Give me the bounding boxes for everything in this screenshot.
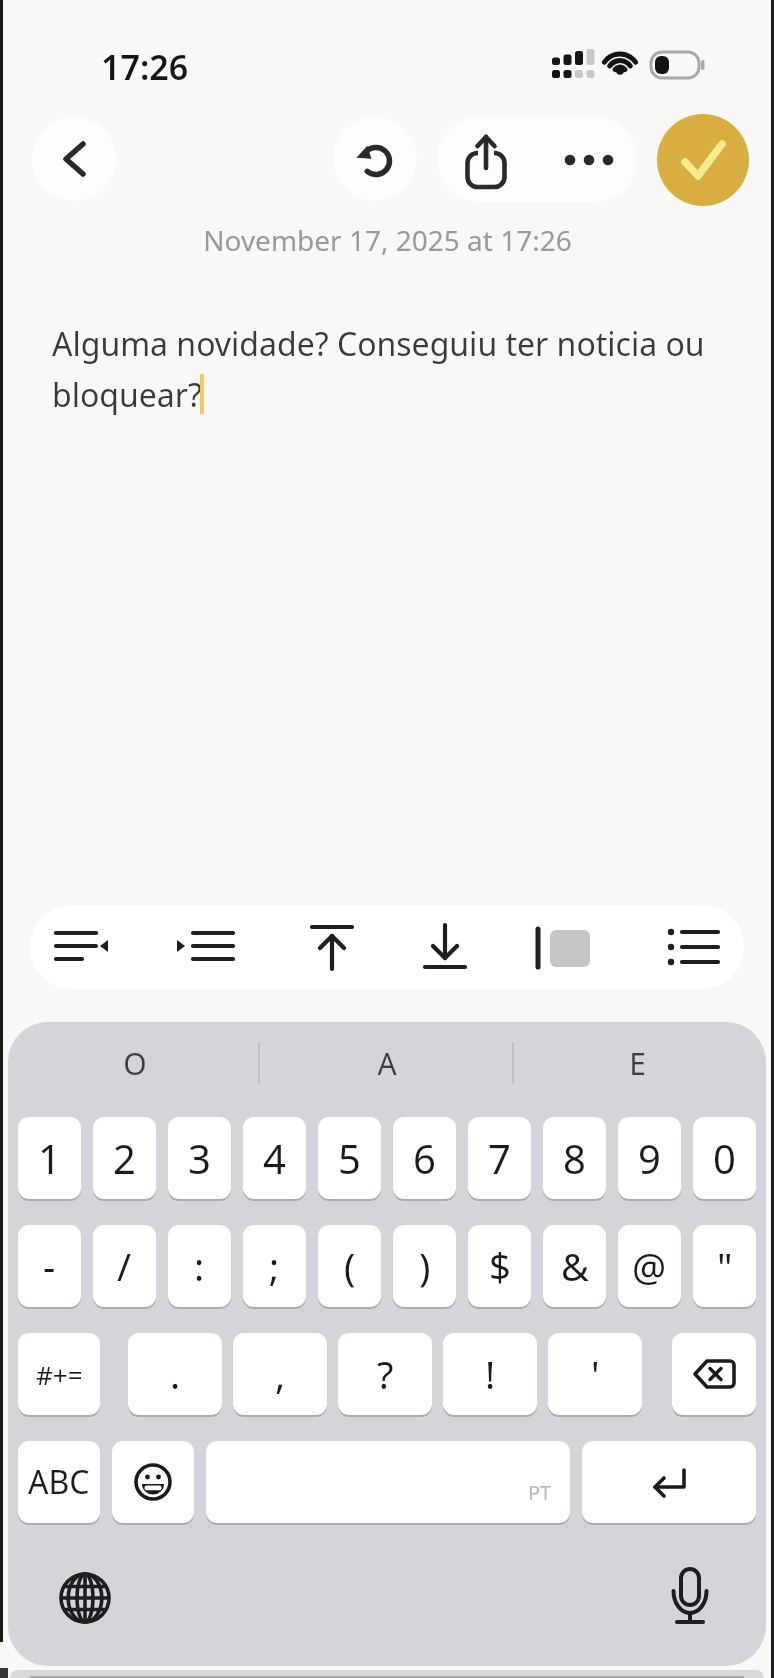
staticText: Alguma novidade? Conseguiu ter noticia o… [52,322,705,416]
staticText: ) [419,1240,431,1292]
staticText: A [377,1043,397,1084]
staticText: , [275,1348,286,1400]
staticText: ' [591,1348,600,1400]
staticText: #+= [36,1357,83,1392]
staticText: ? [377,1348,394,1400]
staticText: & [561,1240,589,1292]
staticText: @ [632,1240,667,1292]
staticText: 8 [563,1131,586,1185]
staticText: 9 [638,1131,661,1185]
staticText: 4 [263,1131,286,1185]
staticText: 7 [488,1131,511,1185]
staticText: O [123,1043,147,1084]
staticText: November 17, 2025 at 17:26 [203,221,572,259]
staticText: / [117,1240,132,1292]
staticText: . [170,1348,181,1400]
staticText: 6 [413,1131,436,1185]
staticText: 2 [113,1131,136,1185]
staticText: $ [489,1240,511,1292]
staticText: 3 [188,1131,211,1185]
staticText: - [43,1240,56,1292]
staticText: ; [269,1240,280,1292]
staticText: E [629,1043,646,1084]
staticText: : [194,1240,205,1292]
staticText: ( [344,1240,356,1292]
staticText: ABC [28,1460,90,1504]
staticText: " [717,1240,733,1292]
staticText: PT [528,1479,552,1506]
staticText: 0 [713,1131,736,1185]
staticText: 1 [38,1131,61,1185]
staticText: 17:26 [101,44,189,90]
staticText: ! [485,1348,496,1400]
staticText: 5 [338,1131,361,1185]
